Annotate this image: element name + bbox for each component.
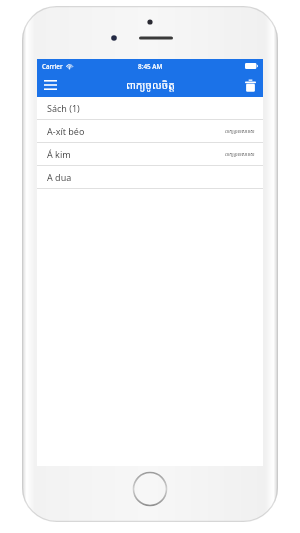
- staticText: Á kim: [47, 148, 71, 160]
- button[interactable]: Open navigation menu: [37, 73, 63, 97]
- button[interactable]: A-xít béo: [37, 120, 263, 142]
- button[interactable]: A dua: [37, 166, 263, 188]
- staticText: A dua: [47, 171, 72, 183]
- button[interactable]: Sách (1): [37, 97, 263, 119]
- staticText: 8:45 AM: [138, 62, 163, 71]
- button[interactable]: Á kim: [37, 143, 263, 165]
- staticText: ពាក្យប្រទេសទេស: [225, 151, 255, 157]
- staticText: ពាក្យចូលចិត្ត: [126, 78, 175, 92]
- staticText: Sách (1): [47, 102, 80, 114]
- staticText: A-xít béo: [47, 125, 85, 137]
- staticText: Carrier: [42, 62, 63, 70]
- button[interactable]: Delete: [237, 73, 263, 97]
- staticText: ពាក្យប្រទេសទេស: [225, 128, 255, 134]
